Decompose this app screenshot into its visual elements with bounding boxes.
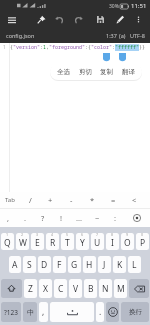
button[interactable]: * xyxy=(82,192,103,208)
button[interactable]: Backspace xyxy=(129,279,149,298)
button[interactable]: E xyxy=(31,233,44,250)
staticText: {"version":1,"foreground":{"color":"ffff… xyxy=(10,44,146,51)
staticText: . xyxy=(99,306,102,318)
staticText: 0 xyxy=(141,233,144,237)
staticText: = xyxy=(111,195,116,205)
button[interactable]: Hide toolbar xyxy=(124,209,150,227)
button[interactable]: W xyxy=(16,233,29,250)
button[interactable]: Q xyxy=(1,233,14,250)
button[interactable]: G xyxy=(68,256,81,273)
staticText: R xyxy=(50,237,56,249)
button[interactable]: . xyxy=(96,302,104,322)
button[interactable]: , xyxy=(39,302,48,322)
button[interactable]: Edit xyxy=(115,14,126,25)
button[interactable]: 剪切 xyxy=(78,66,93,78)
button[interactable]: ! xyxy=(52,209,70,227)
staticText: Tab xyxy=(5,196,15,204)
staticText: 中 xyxy=(27,308,34,317)
button[interactable]: C xyxy=(54,279,67,298)
button[interactable]: X xyxy=(39,279,52,298)
button[interactable]: , xyxy=(0,209,17,227)
staticText: S xyxy=(27,259,32,271)
staticText: ! xyxy=(60,213,63,223)
staticText: 11:51 xyxy=(131,2,147,10)
button[interactable]: Shift xyxy=(1,279,22,298)
button[interactable]: More options xyxy=(133,14,144,25)
button[interactable]: S xyxy=(23,256,36,273)
staticText: * xyxy=(90,195,95,205)
button[interactable]: Menu xyxy=(6,14,17,25)
button[interactable]: M xyxy=(114,279,127,298)
button[interactable]: P xyxy=(136,233,149,250)
button[interactable]: ... xyxy=(70,209,88,227)
staticText: 1:37 xyxy=(106,32,117,39)
staticText: ~ xyxy=(95,213,100,223)
staticText: 1 xyxy=(3,44,6,51)
staticText: 翻译 xyxy=(122,68,135,76)
staticText: UTF-8 xyxy=(130,32,145,39)
button[interactable]: / xyxy=(20,192,40,208)
button[interactable]: L xyxy=(128,256,141,273)
button[interactable]: T xyxy=(61,233,74,250)
button[interactable]: ?123 xyxy=(1,302,21,322)
staticText: C xyxy=(58,283,64,295)
button[interactable]: Emoji xyxy=(106,302,119,322)
button[interactable]: : xyxy=(106,209,124,227)
button[interactable]: H xyxy=(83,256,96,273)
button[interactable]: ~ xyxy=(88,209,106,227)
button[interactable]: Space xyxy=(50,302,94,322)
button[interactable]: I xyxy=(106,233,119,250)
staticText: , xyxy=(7,213,10,223)
staticText: ? xyxy=(41,213,45,223)
button[interactable]: Undo xyxy=(54,14,65,25)
button[interactable]: + xyxy=(40,192,61,208)
staticText: 3 xyxy=(36,233,39,237)
staticText: F xyxy=(57,259,62,271)
staticText: E xyxy=(35,237,40,249)
button[interactable]: Redo xyxy=(73,14,84,25)
button[interactable]: U xyxy=(91,233,104,250)
button[interactable]: 翻译 xyxy=(121,66,136,78)
button[interactable]: R xyxy=(46,233,59,250)
staticText: 复制 xyxy=(100,68,113,76)
button[interactable]: F xyxy=(53,256,66,273)
staticText: U xyxy=(94,237,101,249)
button[interactable]: Save xyxy=(95,14,106,25)
button[interactable]: Z xyxy=(24,279,37,298)
button[interactable]: 中 xyxy=(23,302,37,322)
button[interactable]: J xyxy=(98,256,111,273)
staticText: K xyxy=(117,259,123,271)
staticText: H xyxy=(86,259,93,271)
staticText: 6 xyxy=(81,233,84,237)
button[interactable]: ? xyxy=(34,209,52,227)
button[interactable]: Pin xyxy=(36,14,47,25)
button[interactable]: Tab xyxy=(0,192,20,208)
button[interactable]: Y xyxy=(76,233,89,250)
button[interactable]: K xyxy=(113,256,126,273)
button[interactable]: 换行 xyxy=(121,302,149,322)
staticText: O xyxy=(124,237,131,249)
staticText: M xyxy=(117,283,125,295)
staticText: < xyxy=(132,195,137,205)
staticText: - xyxy=(70,195,73,205)
staticText: Y xyxy=(80,237,85,249)
staticText: / xyxy=(29,195,32,205)
button[interactable]: < xyxy=(124,192,145,208)
staticText: A xyxy=(12,259,18,271)
button[interactable]: V xyxy=(69,279,82,298)
staticText: . xyxy=(24,213,27,223)
button[interactable]: - xyxy=(61,192,82,208)
button[interactable]: 全选 xyxy=(56,66,71,78)
button[interactable]: O xyxy=(121,233,134,250)
staticText: config.json xyxy=(6,32,35,39)
button[interactable]: A xyxy=(9,256,21,273)
button[interactable]: N xyxy=(99,279,112,298)
staticText: , xyxy=(42,306,45,318)
staticText: 2 xyxy=(21,233,24,237)
button[interactable]: . xyxy=(17,209,34,227)
staticText: : xyxy=(114,213,117,223)
button[interactable]: B xyxy=(84,279,97,298)
button[interactable]: 复制 xyxy=(99,66,114,78)
button[interactable]: = xyxy=(103,192,124,208)
button[interactable]: D xyxy=(38,256,51,273)
